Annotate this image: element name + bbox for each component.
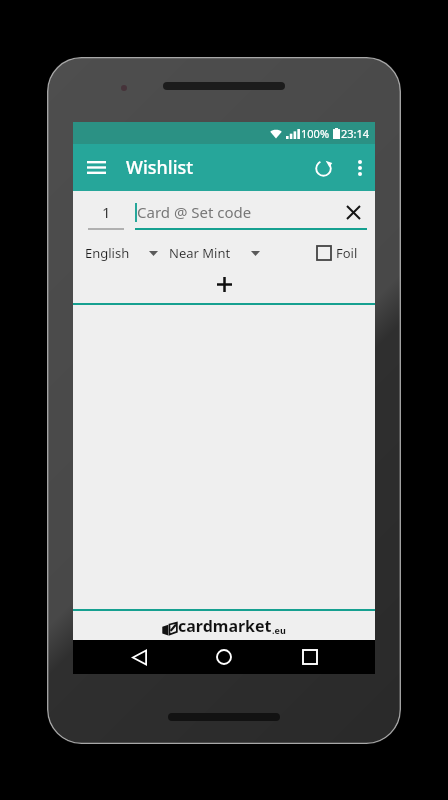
staticText: .eu [272,624,286,636]
button[interactable]: cardmarket.eu [73,611,375,640]
staticText: cardmarket [178,615,272,637]
button[interactable]: 1 [84,200,128,230]
staticText: 1 [102,202,111,222]
button[interactable]: English [85,241,161,265]
button[interactable]: Card @ Set code [135,200,367,230]
button[interactable]: Recent apps [290,640,330,674]
staticText: Near Mint [169,244,231,262]
button[interactable]: Foil [317,244,358,262]
button[interactable]: Refresh [301,146,345,190]
staticText: Foil [336,244,358,262]
staticText: English [85,244,130,262]
button[interactable]: More options [345,146,375,190]
staticText: Wishlist [126,155,194,180]
button[interactable]: Back [119,640,159,674]
button[interactable]: Add card [73,272,375,297]
button[interactable]: Open navigation menu [73,144,120,191]
button[interactable]: Clear text [339,198,367,226]
staticText: Card @ Set code [137,202,252,222]
staticText: 23:14 [341,126,370,141]
button[interactable]: Near Mint [169,241,263,265]
button[interactable]: Home [204,640,244,674]
staticText: 100% [301,126,330,141]
